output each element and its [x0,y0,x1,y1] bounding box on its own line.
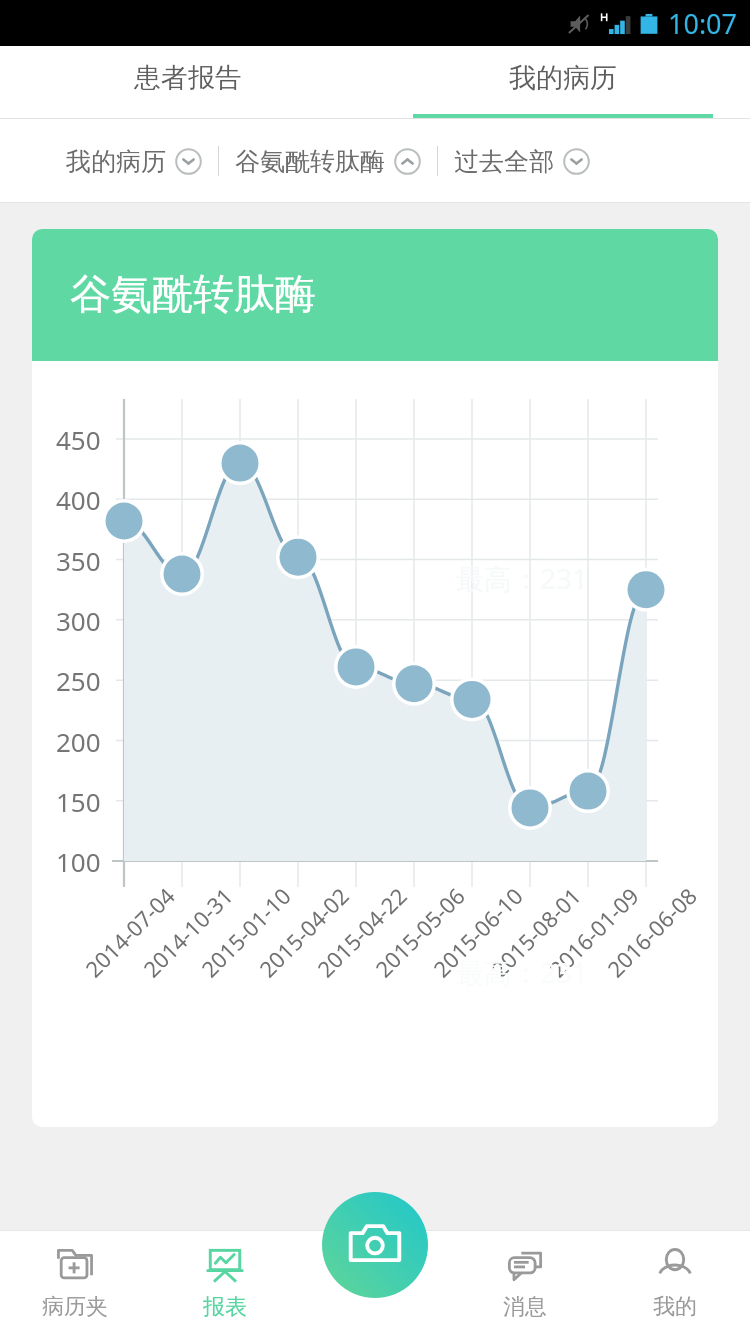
staticText: 300 [56,603,101,638]
staticText: 400 [56,482,101,517]
staticText: 最高：231 [456,559,589,597]
staticText: 过去全部 [454,146,554,177]
staticText: 2015-06-10 [426,881,529,983]
button[interactable]: 病历夹 [0,1230,150,1334]
button[interactable]: 报表 [150,1230,300,1334]
staticText: 最高：231 [456,953,589,991]
staticText: 报表 [203,1293,247,1321]
staticText: 我的病历 [66,146,166,177]
button[interactable]: 患者报告 [0,46,375,119]
button[interactable]: 我的病历 [375,46,750,119]
staticText: 消息 [503,1293,547,1321]
staticText: 谷氨酰转肽酶 [235,146,385,177]
staticText: 2015-08-01 [484,881,587,983]
staticText: 2015-05-06 [368,881,471,983]
button[interactable]: 我的 [600,1230,750,1334]
staticText: 350 [56,543,101,578]
staticText: 10:07 [668,5,738,42]
staticText: 2014-10-31 [136,881,239,983]
staticText: 2016-01-09 [542,881,645,983]
staticText: 450 [56,422,101,457]
staticText: 患者报告 [134,61,242,95]
staticText: 250 [56,663,101,698]
staticText: 我的病历 [509,61,617,95]
staticText: 2015-04-22 [310,881,413,983]
staticText: 100 [56,844,101,879]
staticText: 2016-06-08 [600,881,703,983]
staticText: 2014-07-04 [78,881,181,983]
staticText: 谷氨酰转肽酶 [70,269,316,321]
button[interactable]: 我的病历 [66,136,202,187]
staticText: 200 [56,724,101,759]
button[interactable]: 谷氨酰转肽酶 [235,136,421,187]
button[interactable]: 消息 [450,1230,600,1334]
staticText: 2015-01-10 [194,881,297,983]
staticText: 150 [56,784,101,819]
button[interactable]: 过去全部 [454,136,590,187]
staticText: 2015-04-02 [252,881,355,983]
button[interactable]: Take photo [322,1192,428,1298]
staticText: 病历夹 [42,1293,108,1321]
staticText: 我的 [653,1293,697,1321]
button[interactable]: 谷氨酰转肽酶 [32,229,718,1127]
